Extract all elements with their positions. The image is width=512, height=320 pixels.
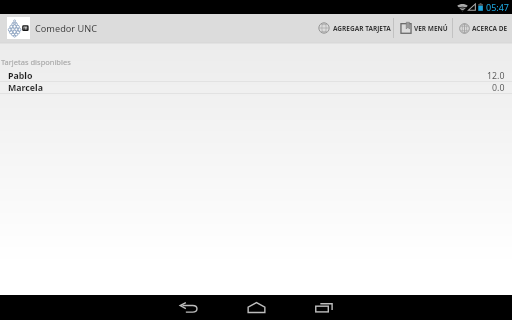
- staticText: 0.0: [492, 82, 505, 93]
- staticText: Tarjetas disponibles: [1, 57, 71, 67]
- staticText: VER MENÚ: [414, 24, 448, 33]
- button[interactable]: AGREGAR TARJETA: [318, 14, 391, 42]
- button[interactable]: Marcela: [0, 82, 512, 93]
- button[interactable]: ACERCA DE: [459, 14, 508, 42]
- staticText: 05:47: [486, 1, 510, 13]
- staticText: AGREGAR TARJETA: [333, 24, 391, 33]
- staticText: Marcela: [8, 82, 44, 93]
- button[interactable]: Recent apps: [310, 295, 338, 320]
- staticText: Pablo: [8, 70, 33, 81]
- button[interactable]: Comedor UNC: [0, 14, 106, 42]
- button[interactable]: Home: [242, 295, 270, 320]
- button[interactable]: VER MENÚ: [400, 14, 448, 42]
- staticText: 12.0: [487, 70, 505, 81]
- button[interactable]: Pablo: [0, 70, 512, 81]
- staticText: ACERCA DE: [472, 24, 508, 33]
- button[interactable]: Back: [174, 295, 202, 320]
- staticText: Comedor UNC: [35, 22, 98, 35]
